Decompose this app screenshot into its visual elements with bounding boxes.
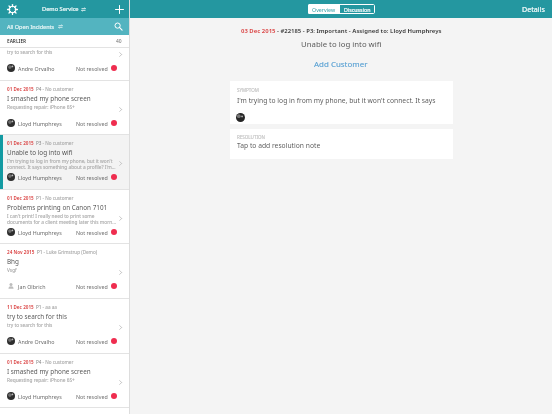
staticText: Not resolved (76, 120, 108, 127)
staticText: Vsgf (7, 267, 116, 274)
staticText: Unable to log into wifi (301, 39, 382, 50)
other: Search (114, 22, 123, 31)
staticText: Not resolved (76, 65, 108, 72)
staticText: Lloyd Humphreys (18, 120, 62, 127)
staticText: 11 Dec 2015 (7, 304, 34, 310)
staticText: 40 (116, 38, 122, 45)
staticText: Lloyd Humphreys (18, 174, 62, 181)
staticText: try to search for this (7, 312, 68, 321)
staticText: Not resolved (76, 338, 108, 345)
staticText: 01 Dec 2015 (7, 359, 34, 365)
button[interactable]: 01 Dec 2015 (0, 135, 129, 189)
button[interactable]: RESOLUTION (230, 129, 453, 159)
staticText: Details (522, 4, 545, 14)
staticText: I'm trying to log in from my phone, but … (7, 158, 116, 170)
staticText: try to search for this (7, 322, 116, 329)
button[interactable]: 01 Dec 2015 (0, 354, 129, 407)
button[interactable]: Add Customer (308, 57, 374, 72)
staticText: 01 Dec 2015 (7, 195, 34, 201)
staticText: Overview (312, 6, 336, 13)
staticText: Jan Olbrich (18, 283, 46, 290)
staticText: P4 - No customer (36, 359, 74, 365)
button[interactable]: All Open Incidents (0, 18, 129, 35)
staticText: Requesting repair: iPhone 6S+ (7, 104, 116, 111)
staticText: Andre Orvalho (18, 338, 55, 345)
button[interactable]: 01 Dec 2015 (0, 190, 129, 243)
button[interactable]: try to search for this (0, 48, 129, 80)
staticText: Problems printing on Canon 7101 (7, 203, 108, 212)
staticText: 24 Nov 2015 (7, 249, 35, 255)
staticText: try to search for this (7, 49, 117, 56)
button[interactable]: Settings (4, 1, 20, 17)
staticText: 01 Dec 2015 (7, 86, 34, 92)
staticText: 03 Dec 2015 - #22185 - P3: Important - A… (241, 27, 442, 35)
button[interactable]: Add incident (111, 1, 127, 17)
staticText: I'm trying to log in from my phone, but … (237, 96, 436, 105)
button[interactable]: Overview (308, 4, 340, 14)
staticText: Discussion (344, 6, 371, 13)
staticText: Bhg (7, 257, 19, 266)
staticText: P1 - Luke Grimstrup (Demo) (37, 249, 98, 255)
staticText: Not resolved (76, 174, 108, 181)
staticText: P4 - No customer (36, 86, 74, 92)
staticText: 01 Dec 2015 (7, 140, 34, 146)
button[interactable]: 24 Nov 2015 (0, 244, 129, 298)
button[interactable]: SYMPTOM (230, 81, 453, 124)
staticText: Tap to add resolution note (237, 141, 321, 150)
staticText: SYMPTOM (237, 87, 259, 93)
button[interactable]: 01 Dec 2015 (0, 81, 129, 134)
button[interactable]: Details (517, 2, 552, 16)
staticText: Not resolved (76, 283, 108, 290)
staticText: I smashed my phone screen (7, 367, 91, 376)
staticText: All Open Incidents (7, 23, 55, 30)
staticText: Not resolved (76, 229, 108, 236)
staticText: P1 - No customer (36, 195, 74, 201)
staticText: Not resolved (76, 393, 108, 400)
staticText: P3 - No customer (36, 140, 74, 146)
staticText: P1 - aa aa (36, 304, 57, 310)
staticText: I smashed my phone screen (7, 94, 91, 103)
staticText: Demo Service (42, 5, 79, 13)
staticText: I can't print! I really need to print so… (7, 213, 116, 225)
button[interactable]: Discussion (340, 4, 375, 14)
button[interactable]: 11 Dec 2015 (0, 299, 129, 353)
staticText: Requesting repair: iPhone 6S+ (7, 377, 116, 384)
staticText: EARLIER (7, 38, 27, 44)
staticText: Lloyd Humphreys (18, 229, 62, 236)
staticText: RESOLUTION (237, 134, 265, 140)
staticText: Unable to log into wifi (7, 148, 73, 157)
staticText: Add Customer (314, 59, 368, 70)
staticText: Lloyd Humphreys (18, 393, 62, 400)
staticText: Andre Orvalho (18, 65, 55, 72)
